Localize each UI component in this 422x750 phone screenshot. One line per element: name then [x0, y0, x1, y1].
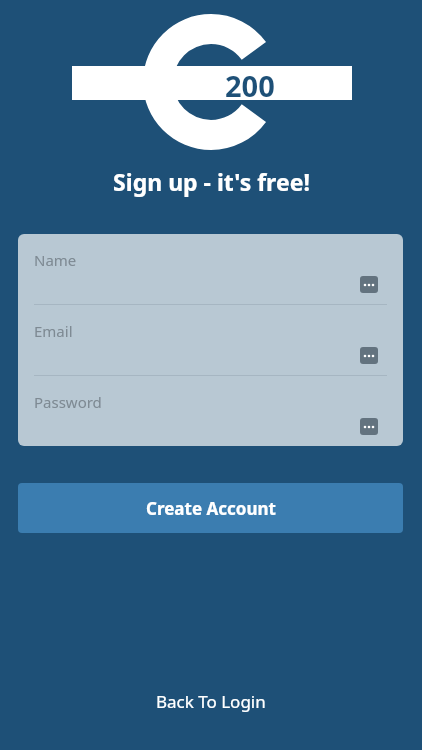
staticText: Create Account [146, 497, 276, 520]
button[interactable]: More options for Email [360, 347, 378, 364]
staticText: Email [34, 321, 73, 341]
button[interactable]: Email [18, 305, 403, 375]
button[interactable]: Back To Login [0, 682, 422, 720]
staticText: Sign up - it's free! [113, 166, 310, 197]
button[interactable]: Create Account [18, 483, 403, 533]
staticText: Back To Login [156, 690, 266, 713]
button[interactable]: Password [18, 376, 403, 446]
staticText: 200 [225, 66, 275, 100]
staticText: Password [34, 392, 102, 412]
button[interactable]: Name [18, 234, 403, 304]
staticText: Name [34, 250, 77, 270]
button[interactable]: More options for Name [360, 276, 378, 293]
button[interactable]: More options for Password [360, 418, 378, 435]
